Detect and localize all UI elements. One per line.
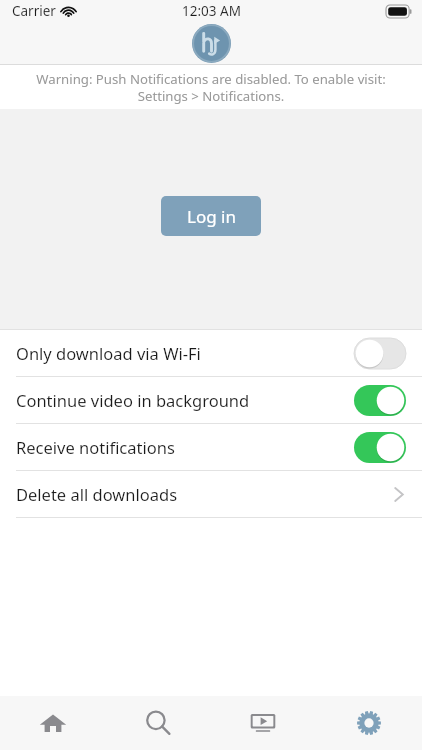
staticText: Delete all downloads bbox=[16, 483, 178, 505]
button[interactable]: Settings bbox=[316, 696, 422, 750]
staticText: Log in bbox=[187, 205, 236, 228]
button[interactable]: Videos bbox=[210, 696, 316, 750]
button[interactable]: Log in bbox=[161, 196, 261, 236]
button[interactable]: Receive notifications bbox=[0, 424, 422, 470]
staticText: Continue video in background bbox=[16, 389, 250, 411]
button[interactable]: Continue video in background bbox=[0, 377, 422, 423]
button[interactable]: Only download via Wi-Fi bbox=[0, 330, 422, 376]
staticText: Carrier bbox=[12, 2, 56, 20]
button[interactable]: Home bbox=[0, 696, 105, 750]
button[interactable]: Search bbox=[105, 696, 210, 750]
staticText: Receive notifications bbox=[16, 436, 175, 458]
button[interactable]: Delete all downloads bbox=[0, 471, 422, 517]
staticText: Only download via Wi-Fi bbox=[16, 342, 201, 364]
staticText: 12:03 AM bbox=[182, 2, 241, 20]
button[interactable]: App logo bbox=[192, 24, 231, 63]
staticText: Warning: Push Notifications are disabled… bbox=[12, 70, 410, 105]
